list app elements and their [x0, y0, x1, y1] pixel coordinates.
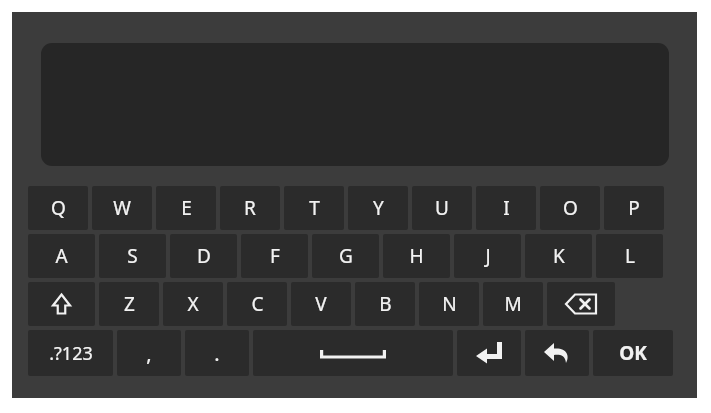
staticText: T — [309, 195, 320, 221]
staticText: .?123 — [49, 341, 93, 366]
staticText: F — [270, 243, 280, 269]
button[interactable]: I — [476, 186, 536, 230]
button[interactable]: M — [483, 282, 543, 326]
staticText: Z — [124, 291, 135, 317]
staticText: K — [553, 243, 565, 269]
button[interactable]: X — [163, 282, 223, 326]
staticText: J — [485, 243, 491, 269]
button[interactable]: F — [241, 234, 308, 278]
staticText: X — [187, 291, 199, 317]
button[interactable]: Q — [28, 186, 88, 230]
button[interactable]: Space — [253, 330, 453, 376]
button[interactable]: S — [99, 234, 166, 278]
staticText: M — [504, 291, 522, 317]
staticText: H — [409, 243, 424, 269]
button[interactable]: V — [291, 282, 351, 326]
staticText: A — [55, 243, 68, 269]
button[interactable]: E — [156, 186, 216, 230]
staticText: E — [181, 195, 192, 221]
staticText: S — [127, 243, 138, 269]
staticText: C — [251, 291, 264, 317]
staticText: G — [339, 243, 353, 269]
staticText: R — [244, 195, 256, 221]
staticText: U — [435, 195, 449, 221]
button[interactable]: J — [454, 234, 521, 278]
button[interactable]: Undo — [525, 330, 589, 376]
staticText: L — [625, 243, 635, 269]
staticText: P — [628, 195, 640, 221]
button[interactable]: L — [596, 234, 663, 278]
staticText: N — [442, 291, 457, 317]
button[interactable]: H — [383, 234, 450, 278]
button[interactable]: A — [28, 234, 95, 278]
staticText: V — [315, 291, 327, 317]
button[interactable]: Backspace — [547, 282, 615, 326]
button[interactable]: C — [227, 282, 287, 326]
button[interactable]: O — [540, 186, 600, 230]
button[interactable]: T — [284, 186, 344, 230]
staticText: B — [379, 291, 392, 317]
staticText: . — [214, 340, 220, 367]
button[interactable]: P — [604, 186, 664, 230]
staticText: O — [563, 195, 578, 221]
staticText: I — [503, 195, 510, 221]
button[interactable]: G — [312, 234, 379, 278]
button[interactable]: Enter — [457, 330, 521, 376]
button[interactable]: OK — [593, 330, 673, 376]
staticText: OK — [619, 340, 647, 366]
staticText: W — [113, 195, 131, 221]
button[interactable]: Z — [99, 282, 159, 326]
button[interactable]: .?123 — [28, 330, 113, 376]
button[interactable]: U — [412, 186, 472, 230]
button[interactable]: Y — [348, 186, 408, 230]
button[interactable]: R — [220, 186, 280, 230]
button[interactable]: B — [355, 282, 415, 326]
button[interactable]: D — [170, 234, 237, 278]
staticText: D — [197, 243, 211, 269]
button[interactable]: N — [419, 282, 479, 326]
staticText: Q — [51, 195, 66, 221]
button[interactable]: . — [185, 330, 249, 376]
button[interactable]: W — [92, 186, 152, 230]
button[interactable]: Shift — [28, 282, 95, 326]
button[interactable]: , — [117, 330, 181, 376]
staticText: , — [146, 340, 152, 367]
button[interactable]: K — [525, 234, 592, 278]
staticText: Y — [373, 195, 384, 221]
